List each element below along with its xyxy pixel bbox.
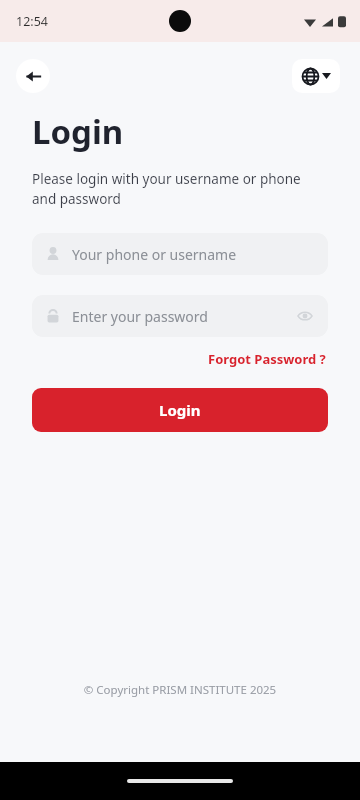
staticText: Forgot Password ? xyxy=(208,350,326,368)
button[interactable]: Login xyxy=(32,388,328,432)
button[interactable]: Back xyxy=(16,59,50,93)
button[interactable]: Select language xyxy=(292,59,340,93)
staticText: Login xyxy=(159,400,201,420)
staticText: © Copyright PRISM INSTITUTE 2025 xyxy=(0,682,360,698)
staticText: Enter your password xyxy=(72,307,295,326)
button[interactable]: Enter your password xyxy=(32,295,328,337)
staticText: Your phone or username xyxy=(72,245,315,264)
button[interactable]: Show password xyxy=(295,306,315,326)
button[interactable]: Forgot Password ? xyxy=(206,348,328,370)
staticText: Please login with your username or phone… xyxy=(32,170,328,208)
staticText: Login xyxy=(32,109,124,154)
staticText: 12:54 xyxy=(16,13,48,30)
button[interactable]: Your phone or username xyxy=(32,233,328,275)
